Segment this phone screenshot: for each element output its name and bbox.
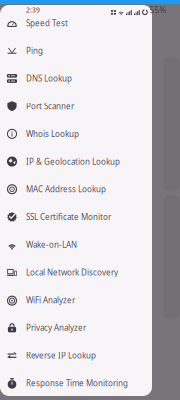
staticText: Reverse IP Lookup <box>26 350 96 361</box>
button[interactable]: Reverse IP Lookup <box>0 342 152 369</box>
staticText: Port Scanner <box>26 101 74 111</box>
staticText: MAC Address Lookup <box>26 184 106 194</box>
staticText: Ping <box>26 45 43 56</box>
staticText: DNS Lookup <box>26 73 72 84</box>
staticText: WiFi Analyzer <box>26 295 75 305</box>
staticText: Whois Lookup <box>26 128 79 139</box>
button[interactable]: WiFi Analyzer <box>0 286 152 314</box>
staticText: SSL Certificate Monitor <box>26 212 111 222</box>
button[interactable]: Response Time Monitoring <box>0 369 152 397</box>
button[interactable]: Ping <box>0 37 152 65</box>
staticText: IP & Geolocation Lookup <box>26 156 120 167</box>
button[interactable]: Local Network Discovery <box>0 258 152 286</box>
button[interactable]: SSL Certificate Monitor <box>0 203 152 231</box>
staticText: Privacy Analyzer <box>26 322 86 333</box>
staticText: 55% <box>149 5 166 15</box>
button[interactable]: Privacy Analyzer <box>0 314 152 342</box>
button[interactable]: IP & Geolocation Lookup <box>0 148 152 175</box>
button[interactable]: DNS Lookup <box>0 65 152 92</box>
staticText: Wake-on-LAN <box>26 239 77 250</box>
staticText: Response Time Monitoring <box>26 378 128 388</box>
staticText: Speed Test <box>26 18 68 28</box>
staticText: 2:39 <box>26 6 40 14</box>
button[interactable]: Port Scanner <box>0 92 152 120</box>
button[interactable]: Wake-on-LAN <box>0 231 152 258</box>
button[interactable]: Whois Lookup <box>0 120 152 148</box>
staticText: Local Network Discovery <box>26 267 118 278</box>
button[interactable]: Speed Test <box>0 9 152 37</box>
button[interactable]: MAC Address Lookup <box>0 175 152 203</box>
